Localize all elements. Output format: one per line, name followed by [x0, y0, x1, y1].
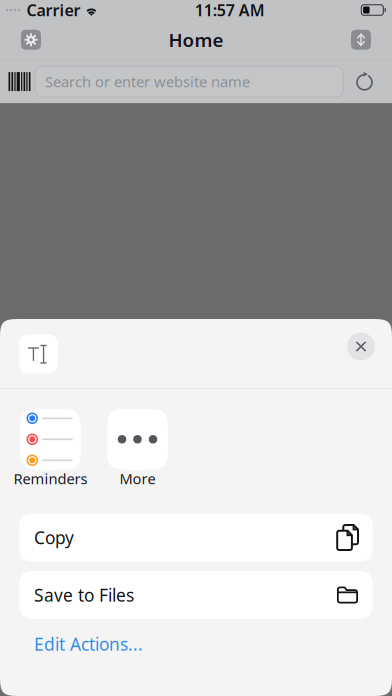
- button[interactable]: Settings: [21, 30, 41, 50]
- staticText: Save to Files: [34, 583, 134, 606]
- button[interactable]: Close: [347, 332, 375, 360]
- button[interactable]: Search or enter website name: [35, 66, 343, 97]
- button[interactable]: Page settings: [351, 30, 371, 50]
- staticText: Edit Actions...: [34, 632, 143, 655]
- staticText: Copy: [34, 526, 74, 549]
- button[interactable]: Scan barcode: [4, 66, 35, 97]
- staticText: Reminders: [13, 469, 87, 488]
- button[interactable]: Reload page: [343, 66, 386, 97]
- button[interactable]: More: [107, 409, 168, 488]
- staticText: Search or enter website name: [45, 72, 250, 91]
- button[interactable]: Save to Files: [19, 571, 373, 619]
- button[interactable]: Edit Actions...: [0, 619, 392, 669]
- button[interactable]: Copy: [19, 513, 373, 561]
- staticText: Home: [168, 27, 223, 52]
- staticText: More: [119, 469, 155, 488]
- button[interactable]: Reminders: [20, 409, 81, 488]
- staticText: Carrier: [26, 0, 80, 21]
- staticText: 11:57 AM: [195, 0, 265, 21]
